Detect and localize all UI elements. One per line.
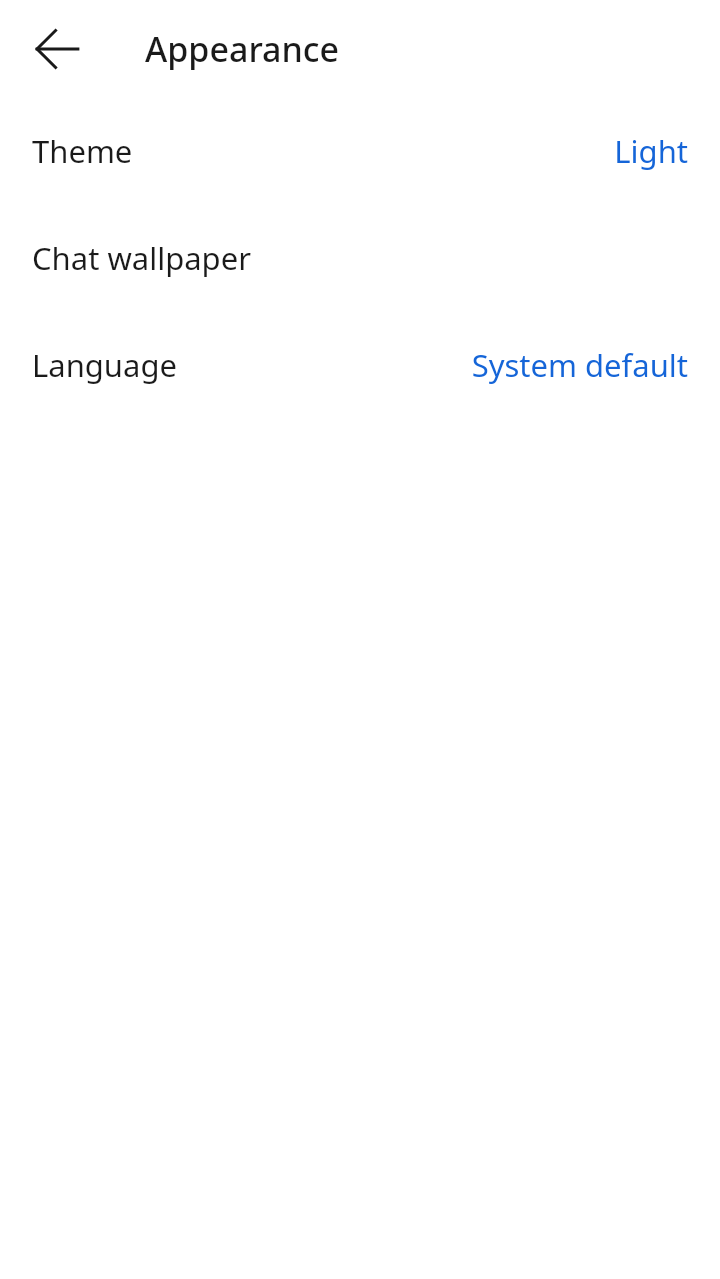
staticText: System default <box>471 344 688 386</box>
button[interactable]: Back <box>33 25 81 73</box>
staticText: Language <box>32 344 177 386</box>
button[interactable]: Language <box>0 311 720 418</box>
staticText: Light <box>614 130 688 172</box>
staticText: Chat wallpaper <box>32 237 251 279</box>
staticText: Theme <box>32 130 133 172</box>
staticText: Appearance <box>145 26 340 72</box>
button[interactable]: Theme <box>0 97 720 204</box>
button[interactable]: Chat wallpaper <box>0 204 720 311</box>
